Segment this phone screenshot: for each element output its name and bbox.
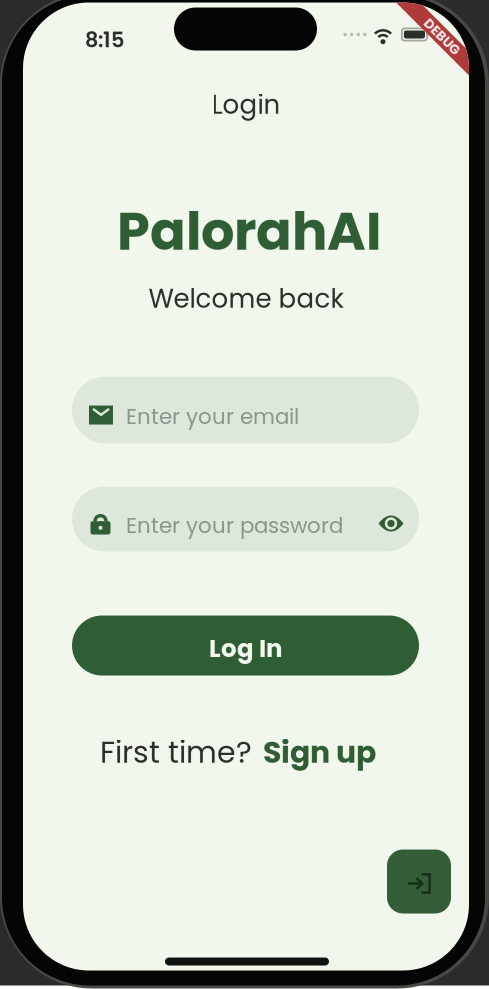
staticText: Enter your email (126, 401, 299, 431)
button[interactable]: Enter your password (72, 486, 419, 551)
staticText: Login (211, 86, 280, 123)
button[interactable]: Sign up (263, 731, 376, 773)
staticText: Enter your password (126, 510, 343, 540)
staticText: Welcome back (148, 280, 343, 317)
staticText: DEBUG (419, 27, 464, 46)
button[interactable]: Sign in (387, 849, 451, 913)
staticText: Log In (209, 631, 282, 666)
button[interactable]: Log In (72, 615, 419, 675)
staticText: PalorahAI (117, 194, 381, 268)
staticText: Sign up (263, 731, 376, 773)
button[interactable]: Enter your email (72, 376, 419, 443)
staticText: First time? (100, 731, 252, 773)
staticText: 8:15 (85, 25, 124, 55)
